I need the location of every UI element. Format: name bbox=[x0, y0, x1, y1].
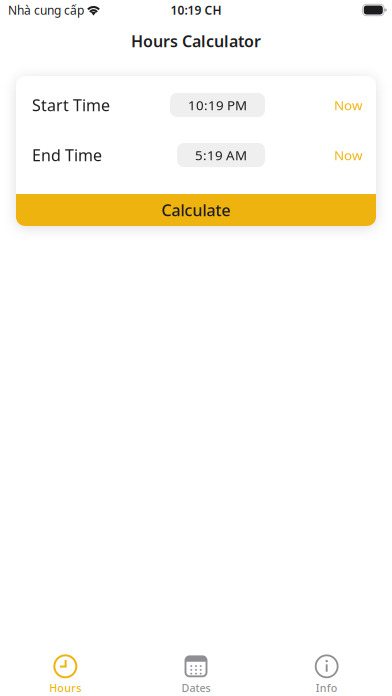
button[interactable]: End Time, 5:19 AM bbox=[177, 143, 265, 167]
staticText: 5:19 AM bbox=[195, 146, 247, 164]
staticText: 10:19 CH bbox=[170, 2, 221, 18]
staticText: Nhà cung cấp bbox=[8, 2, 84, 18]
staticText: Now bbox=[334, 96, 362, 114]
button[interactable]: Dates bbox=[131, 644, 261, 696]
staticText: Hours bbox=[49, 681, 81, 695]
staticText: Start Time bbox=[32, 94, 110, 116]
staticText: Now bbox=[334, 146, 362, 164]
button[interactable]: Hours bbox=[0, 644, 131, 696]
staticText: Calculate bbox=[161, 199, 230, 221]
button[interactable]: Start Time, 10:19 PM bbox=[170, 93, 265, 117]
button[interactable]: Now bbox=[321, 83, 362, 127]
staticText: End Time bbox=[32, 144, 102, 166]
staticText: Hours Calculator bbox=[131, 30, 261, 52]
button[interactable]: Info bbox=[261, 644, 392, 696]
button[interactable]: Now bbox=[321, 133, 362, 177]
staticText: 10:19 PM bbox=[188, 96, 247, 114]
staticText: Info bbox=[316, 681, 338, 695]
staticText: Dates bbox=[181, 681, 210, 695]
button[interactable]: Calculate bbox=[16, 194, 376, 226]
